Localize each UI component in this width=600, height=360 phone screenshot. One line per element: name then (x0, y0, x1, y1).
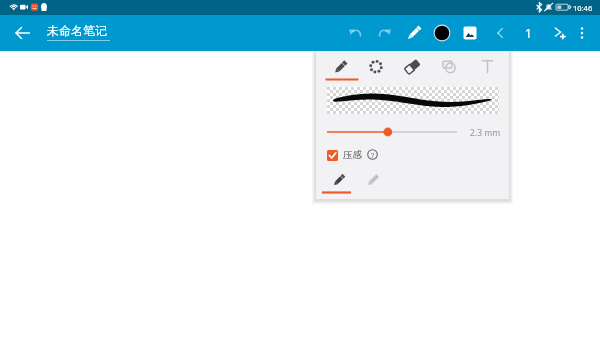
button[interactable]: 压感 (327, 149, 362, 161)
button[interactable]: Help (367, 149, 378, 160)
button[interactable]: Previous page (487, 20, 513, 46)
button[interactable]: Colour (429, 20, 455, 46)
staticText: 压感 (343, 149, 362, 161)
staticText: 未命名笔记 (47, 23, 107, 38)
button[interactable] (396, 51, 429, 81)
staticText: 10:46 (573, 3, 593, 13)
button[interactable]: Redo (372, 20, 398, 46)
button[interactable]: Back (10, 20, 36, 46)
staticText: 1 (525, 25, 532, 41)
staticText: 2.3 mm (470, 127, 501, 139)
button[interactable] (359, 51, 393, 81)
button[interactable]: Add page (546, 20, 572, 46)
button[interactable]: Undo (342, 20, 368, 46)
button[interactable]: 未命名笔记 (47, 23, 110, 41)
button[interactable] (323, 51, 359, 81)
button[interactable]: Pen (322, 163, 356, 200)
button[interactable] (434, 51, 468, 81)
button[interactable]: More options (569, 20, 595, 46)
button[interactable]: Marker (356, 163, 390, 200)
button[interactable]: Pen (401, 20, 427, 46)
button[interactable] (471, 51, 504, 81)
button[interactable]: Insert image (457, 20, 483, 46)
button[interactable]: 1 (515, 20, 541, 46)
button[interactable]: Stroke width (324, 125, 460, 139)
staticText: ? (371, 150, 375, 160)
